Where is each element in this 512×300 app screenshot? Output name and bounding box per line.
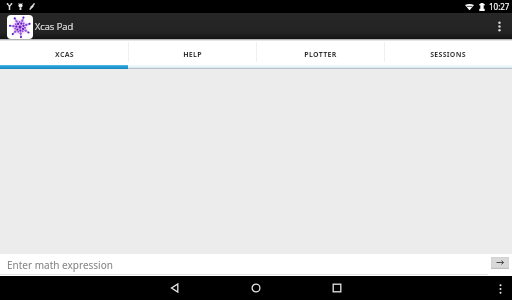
- staticText: XCAS: [55, 50, 74, 60]
- button[interactable]: SESSIONS: [384, 39, 512, 69]
- button[interactable]: Home: [241, 276, 271, 300]
- button[interactable]: More options: [492, 19, 506, 33]
- button[interactable]: PLOTTER: [256, 39, 384, 69]
- staticText: 10:27: [489, 1, 510, 12]
- staticText: Xcas Pad: [35, 20, 74, 33]
- button[interactable]: XCAS: [0, 39, 128, 69]
- button[interactable]: Xcas Pad icon: [7, 15, 33, 39]
- staticText: PLOTTER: [304, 50, 337, 60]
- button[interactable]: Evaluate expression: [491, 257, 509, 268]
- button[interactable]: Recent apps: [322, 276, 352, 300]
- button[interactable]: Back: [160, 276, 190, 300]
- staticText: HELP: [183, 50, 202, 60]
- staticText: SESSIONS: [430, 50, 466, 60]
- staticText: Enter math expression: [7, 258, 113, 272]
- button[interactable]: HELP: [128, 39, 256, 69]
- button[interactable]: Menu: [494, 282, 507, 295]
